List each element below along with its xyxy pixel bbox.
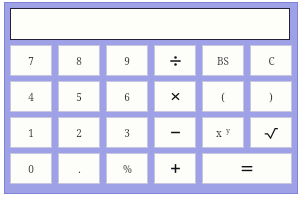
button[interactable]: . (58, 153, 100, 184)
button[interactable]: BS (202, 45, 244, 76)
staticText: . (78, 162, 81, 176)
button[interactable]: 0 (10, 153, 52, 184)
button[interactable]: 2 (58, 117, 100, 148)
button[interactable]: 7 (10, 45, 52, 76)
button[interactable]: Power x to the y (202, 117, 244, 148)
staticText: x (216, 126, 222, 139)
button[interactable]: Divide (154, 45, 196, 76)
button[interactable]: 5 (58, 81, 100, 112)
button[interactable]: 8 (58, 45, 100, 76)
button[interactable]: Square root (250, 117, 292, 148)
staticText: 0 (28, 162, 34, 176)
button[interactable]: 3 (106, 117, 148, 148)
button[interactable]: Multiply (154, 81, 196, 112)
button[interactable]: Equals (202, 153, 292, 184)
button[interactable]: 9 (106, 45, 148, 76)
button[interactable]: C (250, 45, 292, 76)
button[interactable]: ( (202, 81, 244, 112)
button[interactable]: 6 (106, 81, 148, 112)
button[interactable]: ) (250, 81, 292, 112)
staticText: y (226, 126, 230, 136)
staticText: ) (269, 90, 273, 104)
staticText: BS (217, 54, 229, 68)
staticText: 7 (28, 54, 34, 68)
button[interactable]: 1 (10, 117, 52, 148)
staticText: 9 (124, 54, 130, 68)
staticText: ( (221, 90, 225, 104)
staticText: 4 (28, 90, 34, 104)
button[interactable]: Minus (154, 117, 196, 148)
staticText: 1 (28, 126, 34, 140)
button[interactable]: 4 (10, 81, 52, 112)
staticText: 6 (124, 90, 130, 104)
staticText: C (268, 54, 275, 68)
staticText: 3 (124, 126, 130, 140)
button[interactable]: % (106, 153, 148, 184)
button[interactable]: Display (10, 8, 290, 40)
staticText: % (123, 162, 132, 176)
staticText: 2 (76, 126, 82, 140)
button[interactable]: Plus (154, 153, 196, 184)
staticText: 5 (76, 90, 82, 104)
staticText: 8 (76, 54, 82, 68)
